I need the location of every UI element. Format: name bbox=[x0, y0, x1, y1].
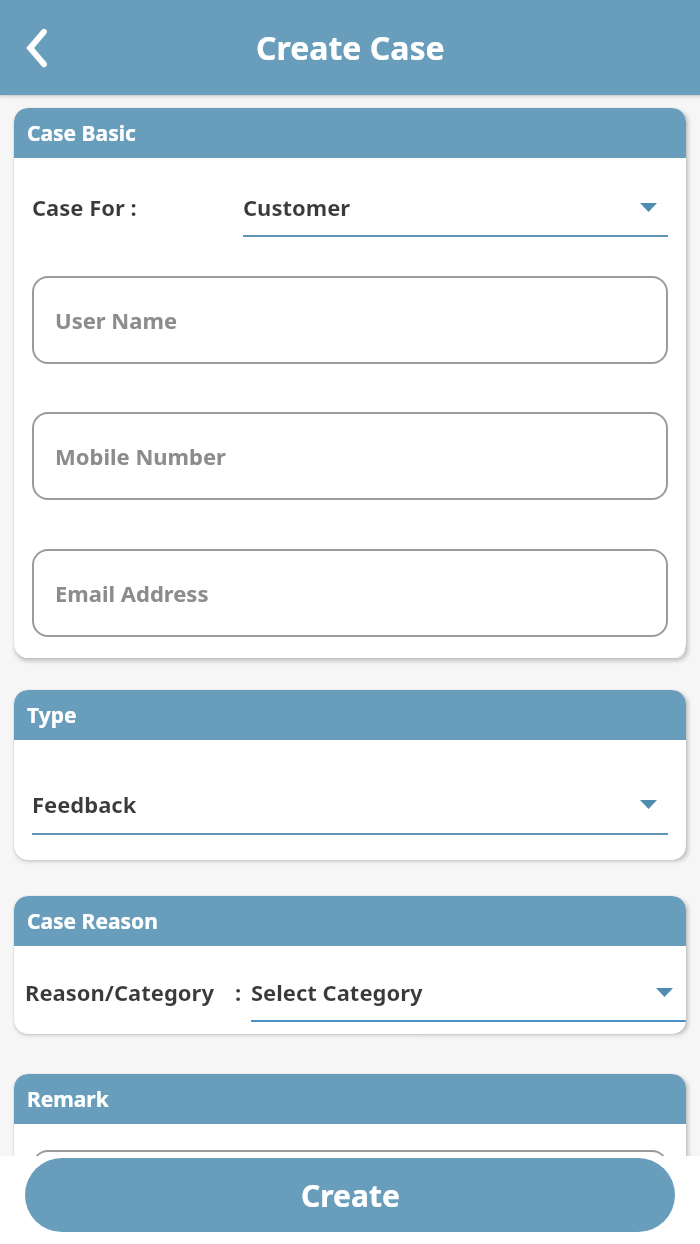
staticText: : bbox=[235, 977, 242, 1007]
button[interactable] bbox=[14, 25, 60, 71]
staticText: Create Case bbox=[256, 26, 445, 70]
staticText: Case Reason bbox=[27, 907, 158, 936]
staticText: Feedback bbox=[32, 789, 640, 819]
button[interactable]: User Name bbox=[32, 276, 668, 364]
staticText: Case For : bbox=[32, 192, 137, 222]
staticText: Remark bbox=[27, 1085, 109, 1114]
staticText: Reason/Category bbox=[25, 977, 215, 1007]
staticText: Select Category bbox=[251, 977, 656, 1007]
staticText: User Name bbox=[55, 305, 178, 335]
staticText: Mobile Number bbox=[55, 441, 226, 471]
staticText: Type bbox=[27, 701, 77, 730]
staticText: Create bbox=[301, 1175, 400, 1216]
button[interactable]: Customer bbox=[243, 183, 668, 237]
button[interactable]: Create bbox=[25, 1158, 675, 1232]
button[interactable]: Feedback bbox=[32, 780, 668, 835]
button[interactable]: Email Address bbox=[32, 549, 668, 637]
staticText: Email Address bbox=[55, 578, 209, 608]
button[interactable]: Mobile Number bbox=[32, 412, 668, 500]
staticText: Case Basic bbox=[27, 119, 136, 148]
staticText: Customer bbox=[243, 192, 640, 222]
button[interactable]: Select Category bbox=[251, 968, 686, 1022]
button[interactable] bbox=[32, 1150, 668, 1244]
